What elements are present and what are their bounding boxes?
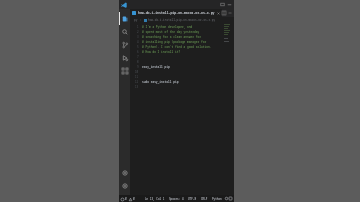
staticText: # spent most of the day yesterday — [142, 30, 200, 34]
staticText: 7 — [137, 55, 139, 59]
button[interactable]: CRLF — [199, 197, 210, 201]
staticText: 8 — [137, 60, 139, 64]
staticText: # installing pip (package manager for — [142, 40, 207, 44]
button[interactable]: Accounts — [119, 166, 130, 179]
staticText: # Python). I can't find a good solution. — [142, 45, 212, 49]
staticText: 11 — [135, 75, 139, 79]
button[interactable]: Feedback — [229, 197, 234, 200]
staticText: 0 — [125, 197, 127, 201]
staticText: CRLF — [201, 197, 208, 201]
staticText: 9 — [137, 65, 139, 69]
staticText: 0 — [133, 197, 135, 201]
staticText: py — [134, 18, 138, 22]
button[interactable]: how-do-i-install-pip-on-macos-or-os-x.py — [130, 9, 222, 17]
button[interactable]: Python — [210, 197, 224, 201]
staticText: sudo easy_install pip — [142, 80, 179, 84]
staticText: how-do-i-install-pip-on-macos-or-os-x.py — [148, 18, 216, 22]
button[interactable]: Settings — [119, 179, 130, 192]
staticText: Ln 13, Col 1 — [145, 197, 165, 201]
button[interactable]: Source Control — [119, 38, 130, 51]
staticText: # I'm a Python developer, and — [142, 25, 193, 29]
button[interactable]: Extensions — [119, 64, 130, 77]
staticText: # searching for a clean answer for — [142, 35, 201, 39]
staticText: 13 — [135, 85, 139, 89]
staticText: 10 — [135, 70, 139, 74]
staticText: 5 — [137, 45, 139, 49]
staticText: 2 — [137, 30, 139, 34]
staticText: how-do-i-install-pip-on-macos-or-os-x.py — [138, 11, 215, 15]
button[interactable]: More actions — [228, 11, 232, 15]
staticText: 3 — [137, 35, 139, 39]
staticText: UTF-8 — [188, 197, 197, 201]
button[interactable]: Close tab — [217, 12, 220, 15]
button[interactable]: UTF-8 — [186, 197, 199, 201]
staticText: 4 — [137, 40, 139, 44]
staticText: 6 — [137, 50, 139, 54]
staticText: 1 — [137, 25, 139, 29]
staticText: easy_install pip — [142, 65, 170, 69]
staticText: › — [140, 18, 142, 22]
button[interactable]: Explorer — [119, 12, 130, 25]
button[interactable]: Split editor — [222, 11, 226, 15]
button[interactable]: Run and Debug — [119, 51, 130, 64]
staticText: Python — [212, 197, 222, 201]
button[interactable]: Notifications — [224, 197, 229, 200]
button[interactable]: 0 — [121, 197, 135, 201]
button[interactable]: Ln 13, Col 1 — [143, 197, 167, 201]
staticText: # How do I install it? — [142, 50, 181, 54]
staticText: 12 — [135, 80, 139, 84]
button[interactable]: Search — [119, 25, 130, 38]
staticText: Spaces: 4 — [169, 197, 184, 201]
button[interactable]: Spaces: 4 — [167, 197, 186, 201]
